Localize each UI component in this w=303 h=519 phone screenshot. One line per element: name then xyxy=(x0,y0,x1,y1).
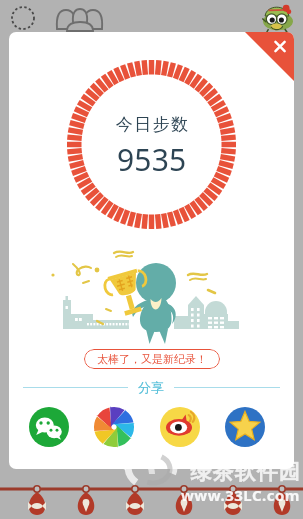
button[interactable]: 太棒了，又是新纪录！ xyxy=(84,349,220,369)
staticText: 9535 xyxy=(117,139,187,180)
button[interactable]: Weibo xyxy=(160,407,200,447)
staticText: 今日步数 xyxy=(115,114,189,135)
button[interactable]: WeChat xyxy=(29,407,69,447)
button[interactable]: Profile xyxy=(9,4,37,32)
button[interactable]: Moments xyxy=(94,407,134,447)
button[interactable]: Close xyxy=(245,32,294,81)
staticText: 绿茶软件园 xyxy=(190,459,300,485)
staticText: 分享 xyxy=(138,379,164,395)
button[interactable]: Friends xyxy=(53,4,87,32)
staticText: 太棒了，又是新纪录！ xyxy=(97,352,207,366)
staticText: www.33LC.com xyxy=(181,485,300,505)
button[interactable]: QZone xyxy=(225,407,265,447)
